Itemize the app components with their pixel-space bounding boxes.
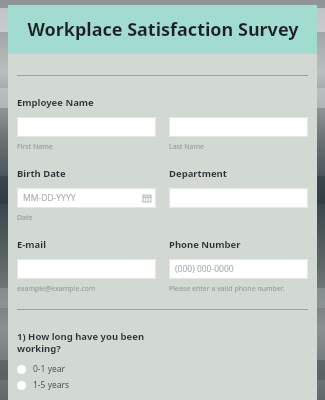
staticText: First Name — [17, 142, 53, 152]
staticText: Employee Name — [17, 96, 94, 109]
staticText: (000) 000-0000 — [175, 263, 234, 275]
button[interactable] — [17, 117, 156, 137]
button[interactable]: (000) 000-0000 — [169, 259, 308, 279]
staticText: 0-1 year — [33, 363, 66, 375]
button[interactable] — [17, 259, 156, 279]
staticText: Last Name — [169, 142, 205, 152]
staticText: Phone Number — [169, 238, 241, 251]
staticText: example@example.com — [17, 284, 96, 294]
staticText: Date — [17, 213, 33, 223]
staticText: MM-DD-YYYY — [23, 192, 76, 204]
staticText: Workplace Satisfaction Survey — [27, 17, 299, 42]
button[interactable]: 0-1 year — [17, 361, 308, 377]
staticText: 1-5 years — [33, 379, 70, 391]
button[interactable] — [169, 188, 308, 208]
staticText: Department — [169, 167, 227, 180]
staticText: E-mail — [17, 238, 46, 251]
button[interactable]: 1-5 years — [17, 377, 308, 393]
staticText: Please enter a valid phone number. — [169, 284, 285, 294]
staticText: 1) How long have you been working? — [17, 330, 145, 355]
button[interactable] — [169, 117, 308, 137]
staticText: Birth Date — [17, 167, 66, 180]
button[interactable]: MM-DD-YYYY — [17, 188, 156, 208]
